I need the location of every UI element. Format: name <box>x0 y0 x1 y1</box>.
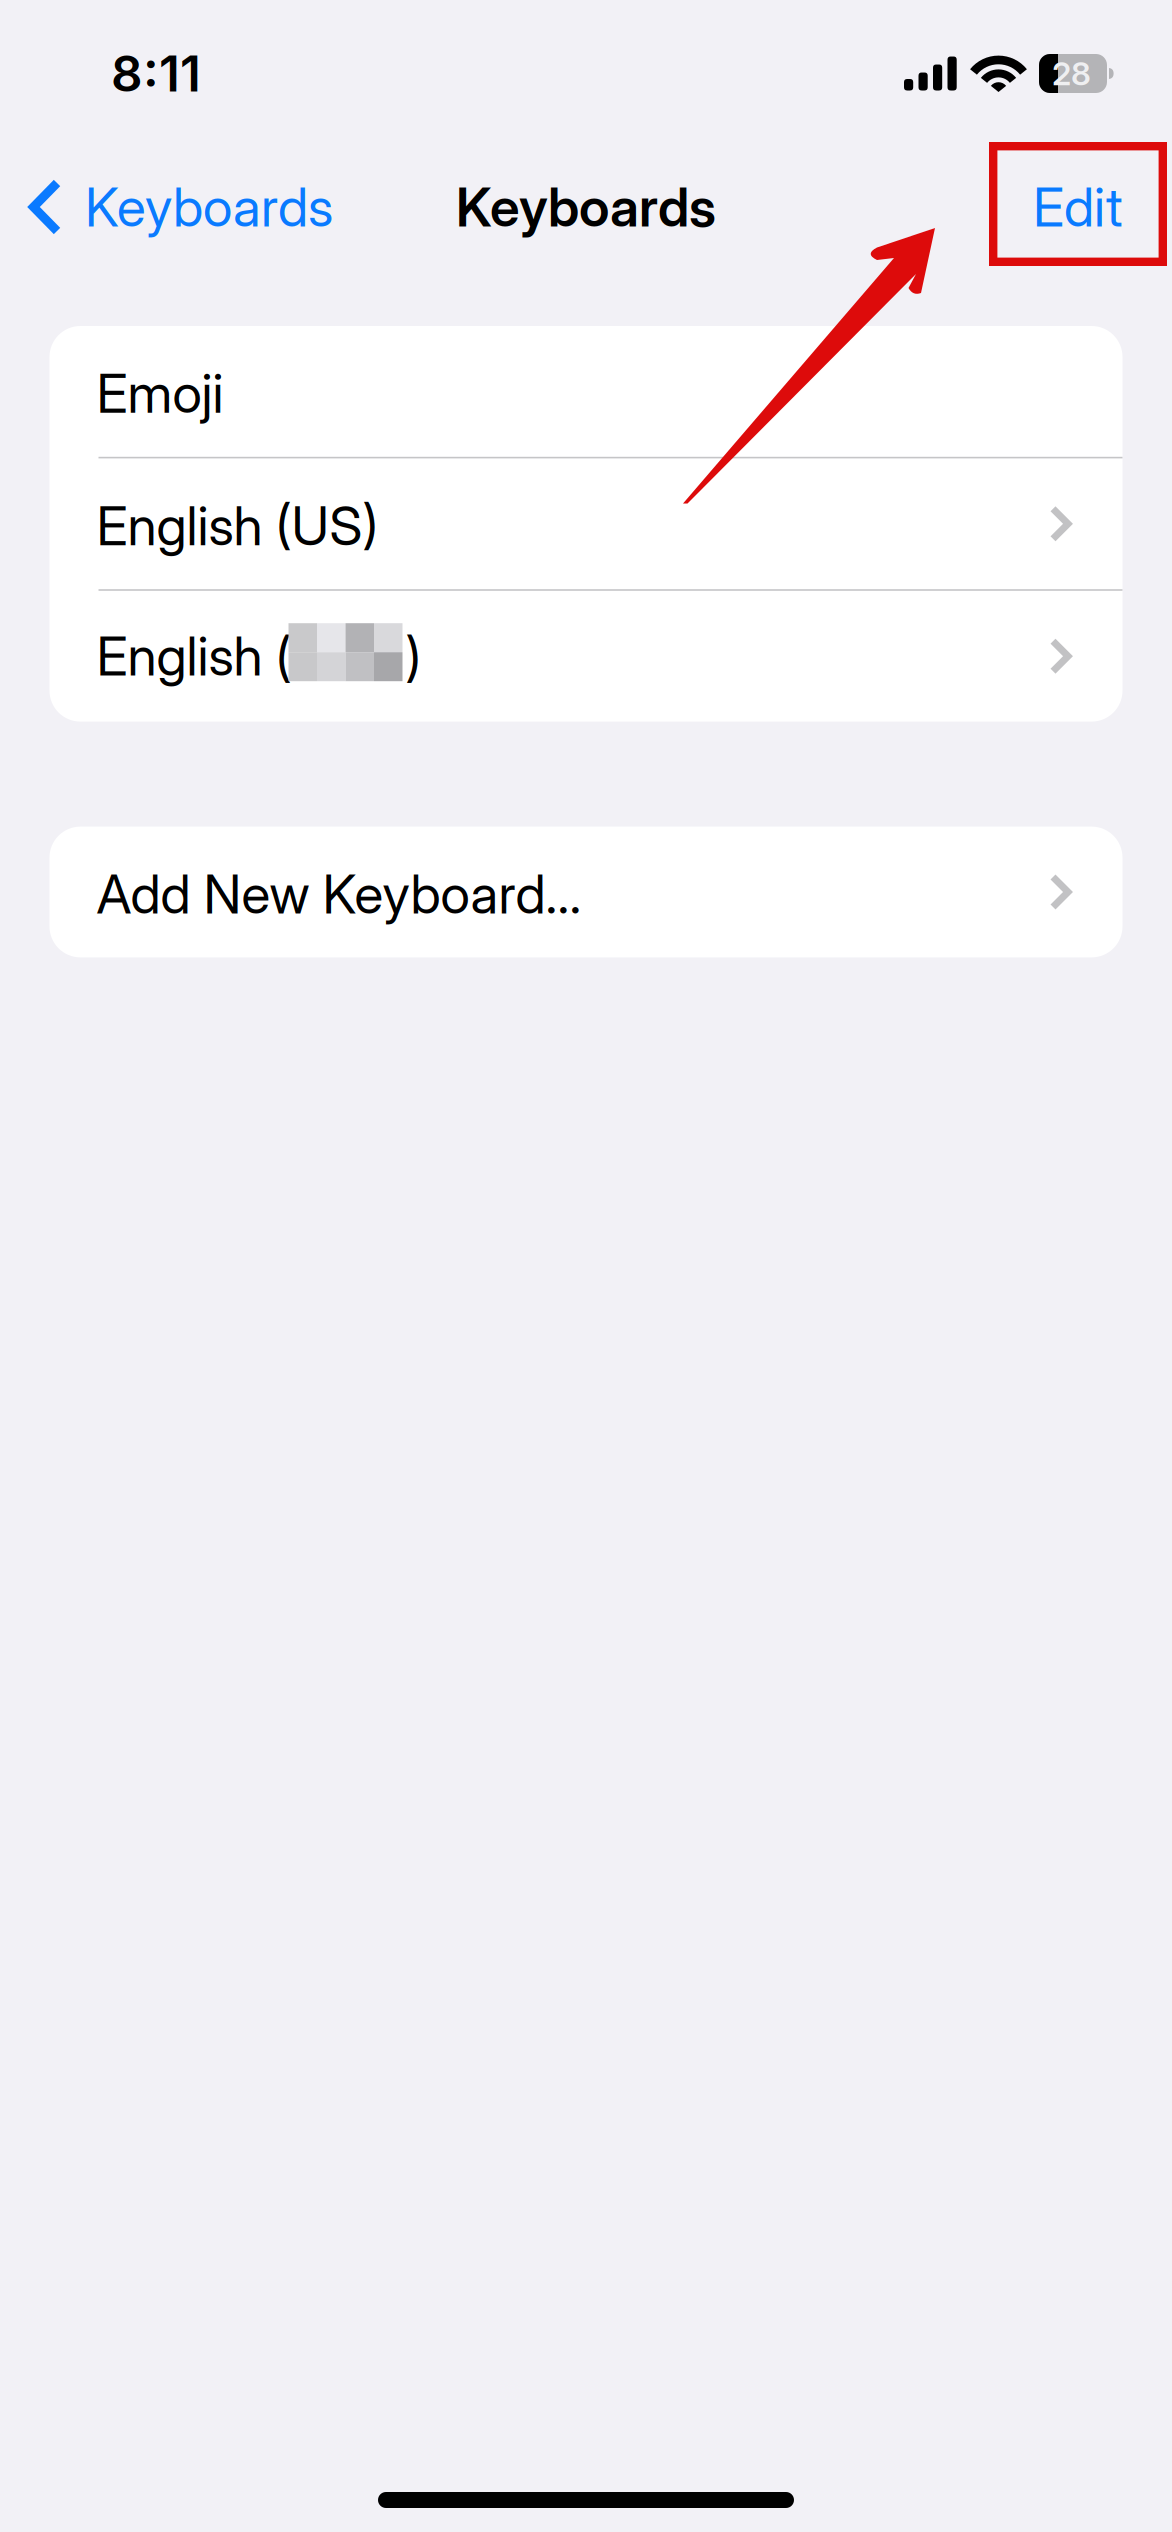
staticText: Keyboards <box>456 175 716 239</box>
button[interactable]: Edit <box>1003 147 1172 267</box>
staticText: English (US) <box>96 493 378 558</box>
staticText: 8:11 <box>111 44 201 103</box>
staticText: Edit <box>1033 175 1123 239</box>
button[interactable]: Emoji <box>49 326 1122 457</box>
button[interactable]: English ( <box>49 591 1122 722</box>
button[interactable]: Add New Keyboard... <box>49 827 1122 957</box>
staticText: Emoji <box>96 361 223 426</box>
button[interactable]: English (US) <box>49 458 1122 589</box>
staticText: English ( <box>96 624 291 688</box>
staticText: ) <box>405 624 421 688</box>
button[interactable]: Keyboards <box>0 147 353 267</box>
staticText: 28 <box>1052 54 1091 93</box>
staticText: Keyboards <box>85 175 333 239</box>
staticText: Add New Keyboard... <box>96 862 581 926</box>
